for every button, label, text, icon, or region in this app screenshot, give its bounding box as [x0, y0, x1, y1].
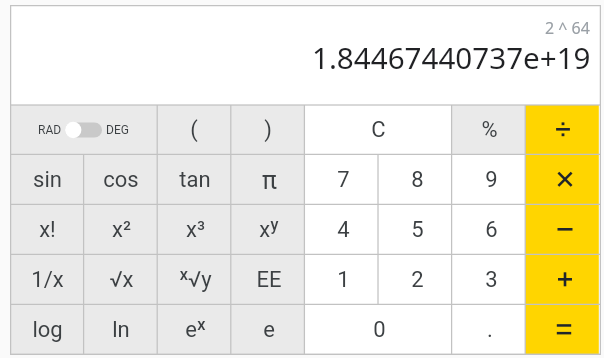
- button[interactable]: 7: [306, 155, 380, 205]
- staticText: √x: [109, 267, 134, 293]
- staticText: C: [371, 117, 386, 143]
- button[interactable]: 6: [454, 205, 528, 255]
- button[interactable]: e: [232, 305, 306, 355]
- staticText: 7: [337, 167, 350, 193]
- button[interactable]: 0: [306, 305, 453, 355]
- button[interactable]: (: [157, 105, 231, 155]
- other: Subtract: [553, 218, 577, 242]
- other: Equals: [552, 318, 576, 342]
- staticText: 4: [337, 217, 350, 243]
- button[interactable]: cos: [84, 155, 158, 205]
- staticText: 3: [485, 267, 498, 293]
- button[interactable]: Add: [528, 255, 601, 305]
- button[interactable]: ): [231, 105, 305, 155]
- staticText: eˣ: [185, 317, 206, 343]
- button[interactable]: 1/x: [10, 255, 84, 305]
- button[interactable]: C: [305, 105, 452, 155]
- button[interactable]: %: [452, 105, 526, 155]
- button[interactable]: 8: [380, 155, 454, 205]
- staticText: log: [32, 317, 63, 343]
- staticText: RAD: [38, 123, 62, 137]
- button[interactable]: x!: [10, 205, 84, 255]
- staticText: tan: [179, 167, 211, 193]
- staticText: 0: [373, 317, 386, 343]
- staticText: cos: [103, 167, 139, 193]
- button[interactable]: eˣ: [158, 305, 232, 355]
- button[interactable]: sin: [10, 155, 84, 205]
- button[interactable]: ln: [84, 305, 158, 355]
- button[interactable]: log: [10, 305, 84, 355]
- staticText: ln: [112, 317, 130, 343]
- staticText: 5: [411, 217, 424, 243]
- button[interactable]: 4: [306, 205, 380, 255]
- staticText: 1/x: [31, 267, 64, 293]
- staticText: %: [481, 117, 498, 143]
- button[interactable]: x²: [84, 205, 158, 255]
- staticText: sin: [33, 167, 62, 193]
- button[interactable]: Equals: [527, 305, 601, 355]
- button[interactable]: Subtract: [528, 205, 601, 255]
- staticText: 8: [411, 167, 424, 193]
- button[interactable]: π: [232, 155, 306, 205]
- staticText: 2: [411, 267, 424, 293]
- staticText: .: [487, 317, 493, 343]
- button[interactable]: 9: [454, 155, 528, 205]
- button[interactable]: Toggle radians or degrees: [10, 105, 157, 155]
- staticText: 1: [337, 267, 350, 293]
- button[interactable]: tan: [158, 155, 232, 205]
- staticText: x!: [39, 217, 56, 243]
- staticText: DEG: [106, 123, 129, 137]
- staticText: ˣ√y: [179, 267, 212, 293]
- staticText: x³: [186, 217, 205, 243]
- button[interactable]: Multiply: [528, 155, 601, 205]
- staticText: ): [264, 117, 272, 143]
- other: Divide: [551, 118, 575, 142]
- button[interactable]: ˣ√y: [158, 255, 232, 305]
- button[interactable]: 3: [454, 255, 528, 305]
- staticText: EE: [256, 267, 282, 293]
- other: Multiply: [553, 168, 577, 192]
- button[interactable]: .: [453, 305, 527, 355]
- button[interactable]: EE: [232, 255, 306, 305]
- staticText: π: [262, 166, 277, 195]
- staticText: (: [190, 117, 198, 143]
- button[interactable]: √x: [84, 255, 158, 305]
- other: Add: [553, 268, 577, 292]
- button[interactable]: xʸ: [232, 205, 306, 255]
- button[interactable]: 1: [306, 255, 380, 305]
- staticText: e: [263, 317, 275, 343]
- staticText: 1.84467440737e+19: [312, 37, 591, 77]
- button[interactable]: 2: [380, 255, 454, 305]
- staticText: 2 ^ 64: [545, 17, 590, 39]
- staticText: 9: [485, 167, 498, 193]
- staticText: x²: [112, 217, 131, 243]
- staticText: xʸ: [259, 217, 279, 243]
- button[interactable]: 5: [380, 205, 454, 255]
- button[interactable]: x³: [158, 205, 232, 255]
- button[interactable]: Divide: [526, 105, 600, 155]
- staticText: 6: [485, 217, 498, 243]
